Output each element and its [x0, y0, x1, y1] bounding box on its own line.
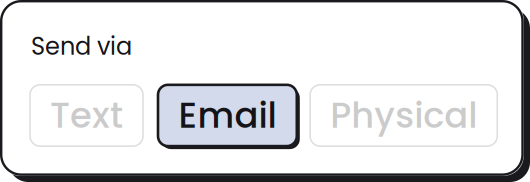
button[interactable]: Email	[158, 85, 300, 149]
button[interactable]: Text	[30, 85, 143, 146]
staticText: Send via	[31, 29, 132, 63]
staticText: Physical	[330, 91, 477, 140]
button[interactable]: Physical	[310, 85, 497, 146]
staticText: Text	[50, 91, 123, 140]
staticText: Email	[178, 91, 276, 140]
